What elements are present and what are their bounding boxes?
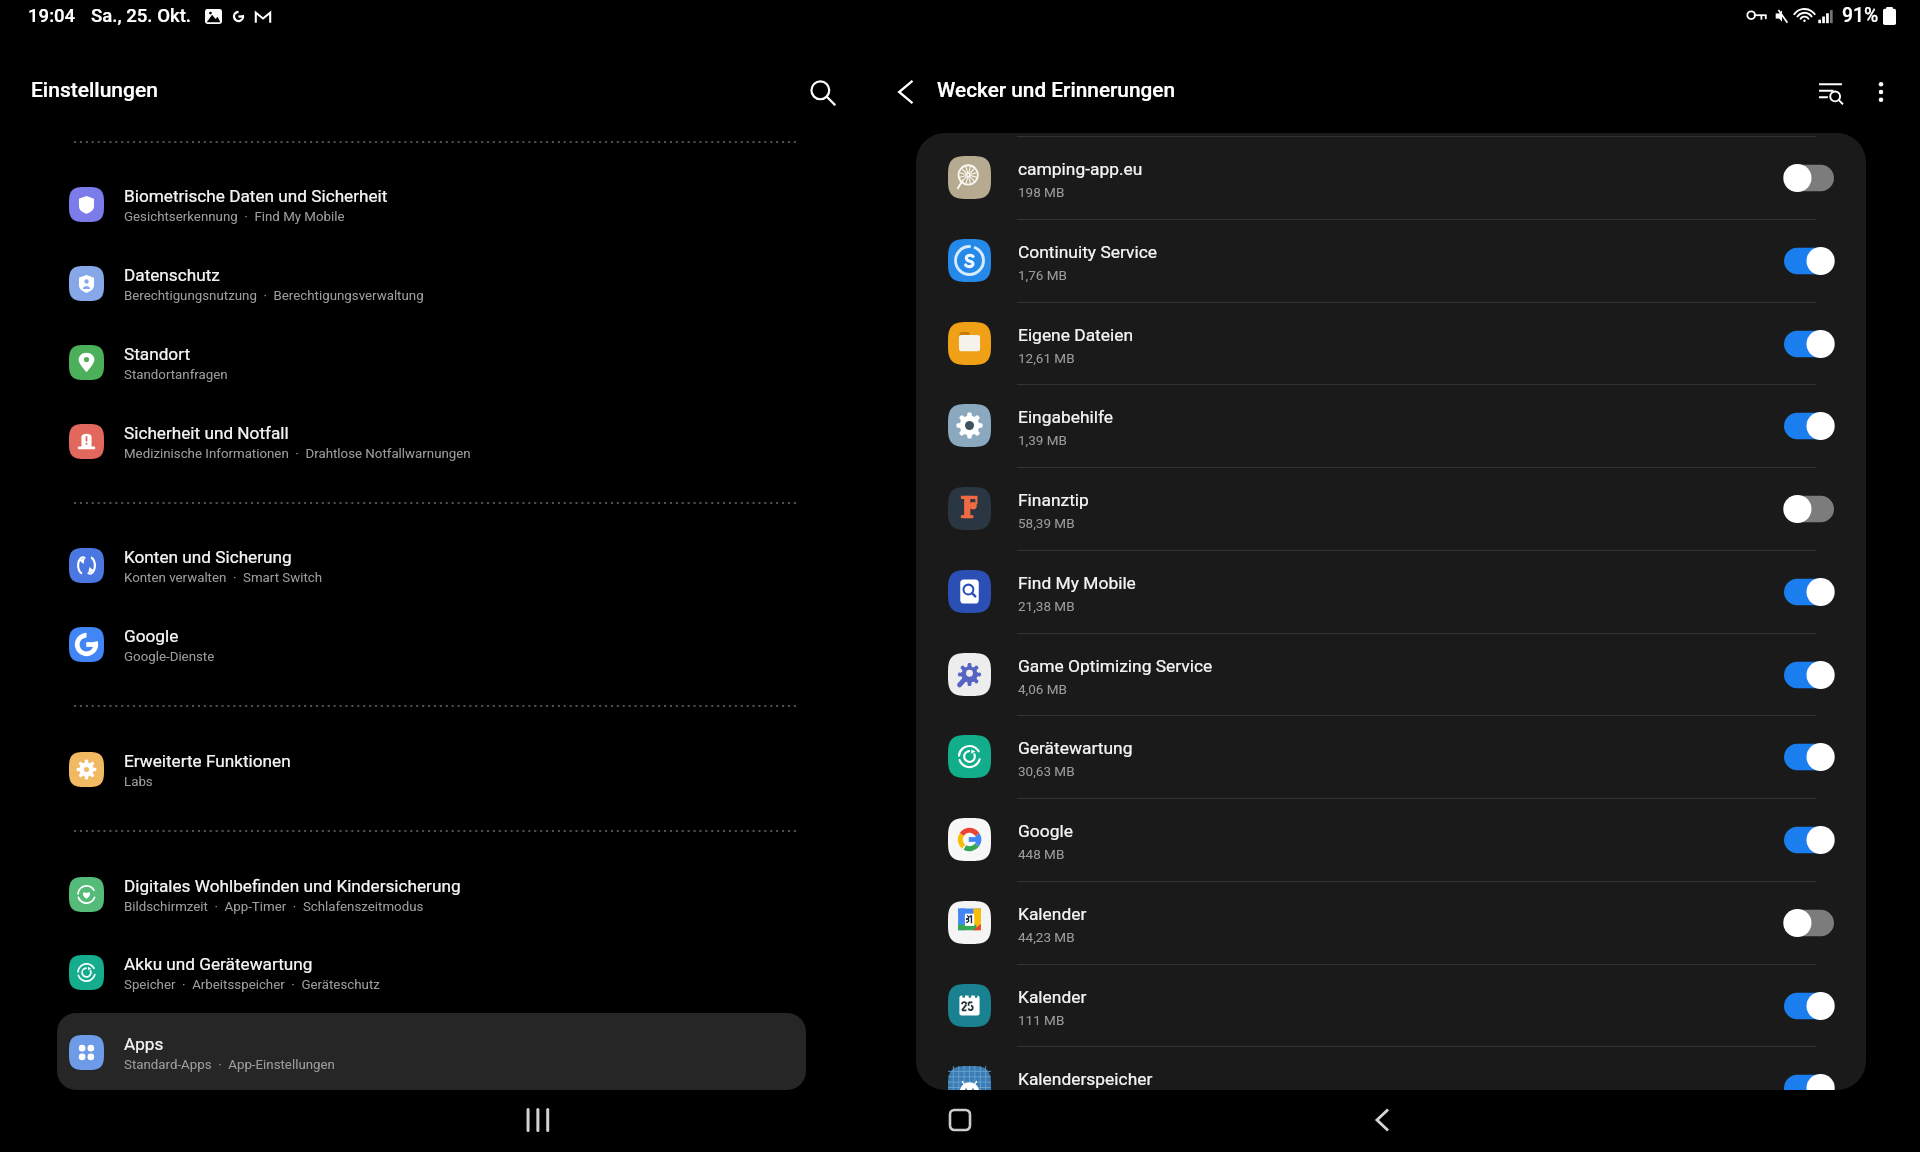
button[interactable]: Google — [916, 798, 1866, 881]
button[interactable]: Kalenderspeicher — [916, 1046, 1866, 1090]
staticText: Konten verwalten · Smart Switch — [124, 570, 323, 586]
button[interactable]: Switch on — [1784, 1073, 1834, 1090]
staticText: Continuity Service — [1018, 242, 1157, 262]
staticText: 198 MB — [1018, 184, 1065, 200]
button[interactable]: Eigene Dateien — [916, 302, 1866, 385]
staticText: Konten und Sicherung — [124, 547, 292, 567]
staticText: 1,76 MB — [1018, 267, 1067, 283]
button[interactable]: Biometrische Daten und Sicherheit — [57, 165, 806, 242]
staticText: Apps — [124, 1034, 164, 1054]
staticText: 111 MB — [1018, 1012, 1065, 1028]
button[interactable]: Switch on — [1784, 742, 1834, 772]
staticText: Gesichtserkennung · Find My Mobile — [124, 209, 345, 225]
button[interactable]: Switch off — [1784, 163, 1834, 193]
button[interactable]: Back — [1360, 1098, 1404, 1142]
button[interactable]: Datenschutz — [57, 244, 806, 321]
button[interactable]: Back — [880, 66, 932, 118]
button[interactable]: Switch off — [1784, 908, 1834, 938]
staticText: Standortanfragen — [124, 367, 228, 383]
button[interactable]: Sicherheit und Notfall — [57, 402, 806, 479]
button[interactable]: Switch on — [1784, 411, 1834, 441]
staticText: Kalender — [1018, 904, 1087, 924]
button[interactable]: Search — [796, 66, 848, 118]
staticText: Standort — [124, 344, 191, 364]
staticText: Kalender — [1018, 987, 1087, 1007]
button[interactable]: More options — [1855, 66, 1907, 118]
staticText: Standard-Apps · App-Einstellungen — [124, 1057, 335, 1073]
button[interactable]: Switch off — [1784, 494, 1834, 524]
staticText: Erweiterte Funktionen — [124, 751, 291, 771]
staticText: 19:04 — [28, 5, 76, 27]
button[interactable]: Gerätewartung — [916, 715, 1866, 798]
button[interactable]: Game Optimizing Service — [916, 633, 1866, 716]
staticText: Google — [1018, 821, 1073, 841]
staticText: Datenschutz — [124, 265, 220, 285]
button[interactable]: Switch on — [1784, 246, 1834, 276]
button[interactable]: Switch on — [1784, 660, 1834, 690]
button[interactable]: Apps — [57, 1013, 806, 1090]
button[interactable]: camping-app.eu — [916, 136, 1866, 219]
button[interactable]: Finanztip — [916, 467, 1866, 550]
staticText: Eigene Dateien — [1018, 325, 1134, 345]
staticText: Bildschirmzeit · App-Timer · Schlafensze… — [124, 899, 424, 915]
button[interactable]: Continuity Service — [916, 219, 1866, 302]
staticText: Finanztip — [1018, 490, 1089, 510]
staticText: Labs — [124, 774, 153, 790]
staticText: Find My Mobile — [1018, 573, 1136, 593]
staticText: Digitales Wohlbefinden und Kindersicheru… — [124, 876, 461, 896]
staticText: Google-Dienste — [124, 649, 215, 665]
staticText: Game Optimizing Service — [1018, 656, 1213, 676]
staticText: 4,06 MB — [1018, 681, 1067, 697]
button[interactable]: Switch on — [1784, 577, 1834, 607]
button[interactable]: Switch on — [1784, 991, 1834, 1021]
staticText: Biometrische Daten und Sicherheit — [124, 186, 388, 206]
staticText: Einstellungen — [31, 78, 158, 103]
staticText: Wecker und Erinnerungen — [937, 78, 1176, 102]
button[interactable]: Home — [938, 1098, 982, 1142]
button[interactable]: Digitales Wohlbefinden und Kindersicheru… — [57, 855, 806, 932]
staticText: Eingabehilfe — [1018, 407, 1114, 427]
staticText: 12,61 MB — [1018, 350, 1075, 366]
button[interactable]: Sort and search — [1805, 66, 1857, 118]
staticText: Sicherheit und Notfall — [124, 423, 289, 443]
staticText: 448 MB — [1018, 846, 1065, 862]
button[interactable]: Eingabehilfe — [916, 384, 1866, 467]
staticText: 91% — [1842, 4, 1879, 27]
button[interactable]: Standort — [57, 323, 806, 400]
staticText: Google — [124, 626, 179, 646]
button[interactable]: Kalender — [916, 964, 1866, 1047]
staticText: Speicher · Arbeitsspeicher · Geräteschut… — [124, 977, 380, 993]
staticText: Akku und Gerätewartung — [124, 954, 313, 974]
button[interactable]: Switch on — [1784, 825, 1834, 855]
staticText: camping-app.eu — [1018, 159, 1143, 179]
button[interactable]: Akku und Gerätewartung — [57, 933, 806, 1010]
staticText: Berechtigungsnutzung · Berechtigungsverw… — [124, 288, 424, 304]
staticText: 44,23 MB — [1018, 929, 1075, 945]
button[interactable]: Switch on — [1784, 329, 1834, 359]
staticText: 21,38 MB — [1018, 598, 1075, 614]
staticText: Medizinische Informationen · Drahtlose N… — [124, 446, 471, 462]
staticText: Kalenderspeicher — [1018, 1069, 1153, 1089]
button[interactable]: Google — [57, 605, 806, 682]
staticText: 58,39 MB — [1018, 515, 1075, 531]
button[interactable]: Erweiterte Funktionen — [57, 730, 806, 807]
button[interactable]: Recent apps — [516, 1098, 560, 1142]
button[interactable]: Kalender — [916, 881, 1866, 964]
staticText: Gerätewartung — [1018, 738, 1133, 758]
button[interactable]: Konten und Sicherung — [57, 526, 806, 603]
button[interactable]: Find My Mobile — [916, 550, 1866, 633]
staticText: Sa., 25. Okt. — [91, 5, 192, 27]
staticText: 1,39 MB — [1018, 432, 1067, 448]
staticText: 30,63 MB — [1018, 763, 1075, 779]
